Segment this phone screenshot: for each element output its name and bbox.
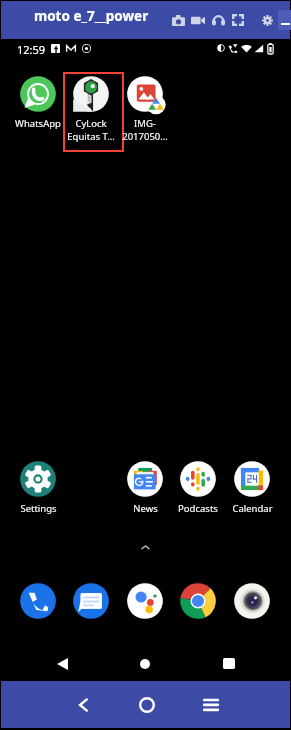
staticText: Podcasts (178, 502, 218, 515)
button[interactable]: IMG- (116, 75, 174, 143)
staticText: IMG- (134, 117, 156, 130)
button[interactable]: Minimize (278, 10, 291, 30)
button[interactable]: Podcasts (169, 460, 227, 515)
staticText: CyLock (75, 117, 107, 130)
button[interactable]: Menu (194, 688, 227, 721)
button[interactable]: CyLock (62, 75, 120, 143)
staticText: 2017050… (122, 130, 168, 143)
staticText: WhatsApp (15, 117, 61, 130)
button[interactable]: Camera (233, 582, 271, 620)
button[interactable]: Audio (209, 9, 227, 31)
button[interactable]: Calendar (223, 460, 281, 515)
button[interactable]: Back (66, 688, 99, 721)
button[interactable]: Assistant (126, 582, 164, 620)
button[interactable]: Screenshot (169, 9, 187, 31)
staticText: Calendar (232, 502, 273, 515)
staticText: Settings (20, 502, 57, 515)
button[interactable]: Back (50, 652, 74, 676)
button[interactable]: News (116, 460, 174, 515)
button[interactable]: Record video (189, 9, 207, 31)
staticText: moto e_7__power (34, 7, 149, 25)
button[interactable]: Messages (72, 582, 110, 620)
button[interactable]: Fullscreen (229, 9, 247, 31)
button[interactable]: Phone (19, 582, 57, 620)
button[interactable]: Home (133, 652, 157, 676)
staticText: 12:59 (17, 42, 46, 57)
button[interactable]: Chrome (179, 582, 217, 620)
button[interactable]: Settings (258, 9, 276, 31)
staticText: News (133, 502, 158, 515)
button[interactable]: Home (130, 688, 163, 721)
button[interactable]: Recent apps (217, 651, 241, 675)
button[interactable]: WhatsApp (9, 75, 67, 130)
staticText: Equitas T… (67, 130, 115, 143)
button[interactable]: Settings (9, 460, 67, 515)
